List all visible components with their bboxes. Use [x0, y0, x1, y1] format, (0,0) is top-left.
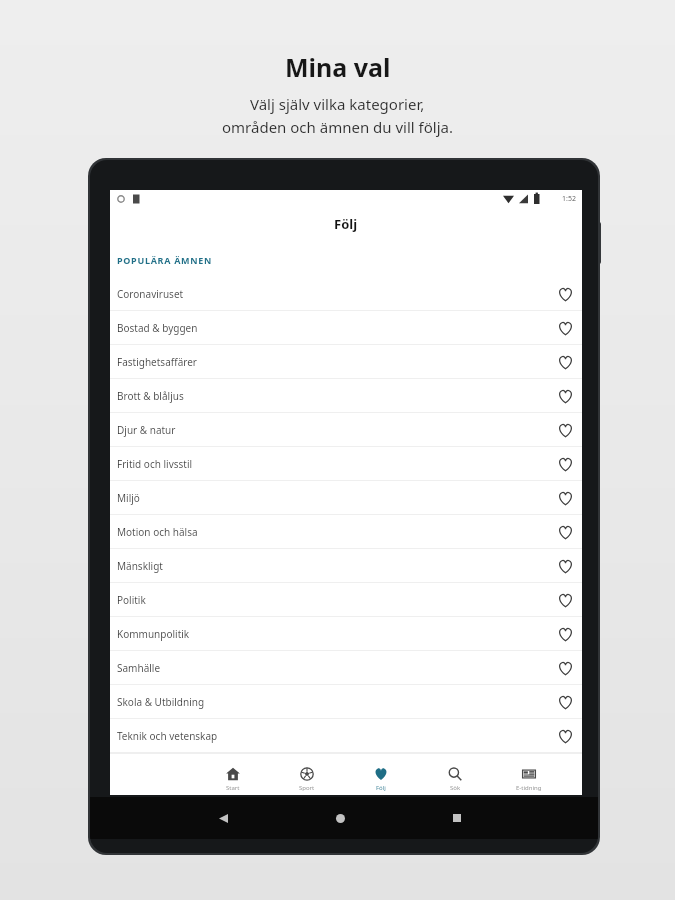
button[interactable]: Back [210, 805, 236, 831]
staticText: Fastighetsaffärer [117, 355, 197, 369]
staticText: Sök [450, 784, 461, 792]
staticText: Mänskligt [117, 559, 163, 573]
button[interactable]: Recent apps [444, 805, 470, 831]
button[interactable]: Mänskligt [110, 549, 582, 582]
button[interactable]: Bostad & byggen [110, 311, 582, 344]
button[interactable]: Sök [418, 764, 492, 795]
staticText: Brott & blåljus [117, 389, 184, 403]
button[interactable]: Skola & Utbildning [110, 685, 582, 718]
button[interactable] [110, 753, 582, 764]
staticText: Sport [299, 784, 315, 792]
button[interactable]: Följ Miljö [554, 487, 576, 509]
staticText: Kommunpolitik [117, 627, 190, 641]
staticText: E-tidning [516, 784, 542, 792]
staticText: Djur & natur [117, 423, 176, 437]
staticText: POPULÄRA ÄMNEN [117, 254, 213, 266]
button[interactable]: Kommunpolitik [110, 617, 582, 650]
button[interactable]: Följ Motion och hälsa [554, 521, 576, 543]
button[interactable]: Följ Skola & Utbildning [554, 691, 576, 713]
staticText: Politik [117, 593, 146, 607]
staticText: Miljö [117, 491, 140, 505]
button[interactable]: Följ [344, 764, 418, 795]
button[interactable]: Coronaviruset [110, 277, 582, 310]
button[interactable]: Följ Fritid och livsstil [554, 453, 576, 475]
button[interactable]: Följ Politik [554, 589, 576, 611]
button[interactable]: Följ Mänskligt [554, 555, 576, 577]
button[interactable]: Motion och hälsa [110, 515, 582, 548]
button[interactable]: Miljö [110, 481, 582, 514]
button[interactable]: Fastighetsaffärer [110, 345, 582, 378]
staticText: Teknik och vetenskap [117, 729, 218, 743]
staticText: områden och ämnen du vill följa. [222, 117, 453, 137]
staticText: Samhälle [117, 661, 161, 675]
staticText: Skola & Utbildning [117, 695, 205, 709]
staticText: Följ [376, 784, 386, 792]
button[interactable]: Start [196, 764, 270, 795]
button[interactable]: Följ Fastighetsaffärer [554, 351, 576, 373]
button[interactable]: Djur & natur [110, 413, 582, 446]
staticText: Start [226, 784, 240, 792]
button[interactable]: Teknik och vetenskap [110, 719, 582, 752]
button[interactable]: Brott & blåljus [110, 379, 582, 412]
button[interactable]: Följ Coronaviruset [554, 283, 576, 305]
staticText: 1:52 [562, 194, 576, 204]
staticText: Mina val [285, 50, 391, 84]
staticText: Följ [334, 215, 358, 233]
button[interactable]: Samhälle [110, 651, 582, 684]
button[interactable]: Följ Bostad & byggen [554, 317, 576, 339]
button[interactable]: Home [327, 805, 353, 831]
button[interactable]: Fritid och livsstil [110, 447, 582, 480]
button[interactable]: Följ Samhälle [554, 657, 576, 679]
staticText: Välj själv vilka kategorier, [250, 94, 425, 114]
button[interactable]: Följ Kommunpolitik [554, 623, 576, 645]
button[interactable]: Följ Teknik och vetenskap [554, 725, 576, 747]
button[interactable]: Följ Brott & blåljus [554, 385, 576, 407]
button[interactable]: Följ Djur & natur [554, 419, 576, 441]
staticText: Bostad & byggen [117, 321, 198, 335]
staticText: Coronaviruset [117, 287, 184, 301]
button[interactable]: E-tidning [492, 764, 566, 795]
button[interactable]: Politik [110, 583, 582, 616]
button[interactable]: Sport [270, 764, 344, 795]
staticText: Motion och hälsa [117, 525, 198, 539]
staticText: Fritid och livsstil [117, 457, 193, 471]
